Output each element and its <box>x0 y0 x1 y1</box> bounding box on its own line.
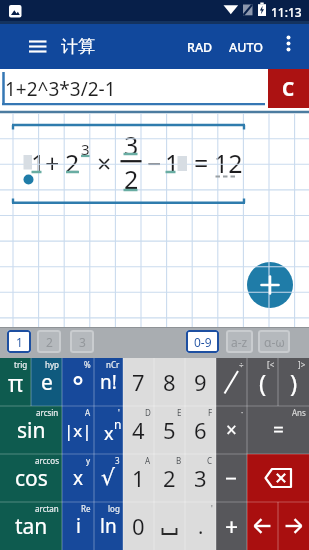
button[interactable]: sin <box>0 406 62 454</box>
button[interactable]: √ <box>94 454 123 502</box>
button[interactable]: + <box>216 502 247 550</box>
staticText: ]> <box>298 359 306 370</box>
button[interactable]: 5 <box>154 406 185 454</box>
staticText: 1 <box>16 334 23 350</box>
button[interactable]: α-ω <box>258 330 290 353</box>
staticText: ' <box>118 407 120 418</box>
staticText: 3 <box>79 334 86 350</box>
staticText: a-z <box>231 334 248 350</box>
staticText: ln <box>100 513 117 539</box>
staticText: × <box>226 417 237 443</box>
staticText: Re <box>81 503 91 514</box>
staticText: · <box>241 407 244 418</box>
button[interactable]: 2 <box>154 454 185 502</box>
staticText: . <box>198 513 204 540</box>
button[interactable]: i <box>62 502 94 550</box>
staticText: e <box>41 368 53 397</box>
staticText: 3 <box>124 128 139 162</box>
button[interactable]: 1 <box>7 330 31 353</box>
staticText: ( <box>259 366 267 399</box>
button[interactable]: × <box>216 406 247 454</box>
button[interactable]: 1 <box>123 454 154 502</box>
staticText: 11:13 <box>271 4 302 20</box>
staticText: ) <box>290 366 298 399</box>
button[interactable]: a-z <box>226 330 253 353</box>
button[interactable]: C <box>268 69 309 108</box>
button[interactable]: 9 <box>185 358 216 406</box>
staticText: trig <box>14 359 28 370</box>
staticText: 2 <box>65 146 80 180</box>
staticText: 5 <box>163 415 176 445</box>
staticText: ' <box>211 503 213 514</box>
button[interactable] <box>278 502 309 550</box>
staticText: i <box>76 513 81 539</box>
button[interactable]: 0 <box>123 502 154 550</box>
staticText: ÷ <box>239 359 244 370</box>
staticText: A <box>85 407 91 418</box>
button[interactable]: 3 <box>70 330 94 353</box>
staticText: α-ω <box>264 334 285 350</box>
button[interactable]: |x| <box>62 406 94 454</box>
staticText: 3 <box>194 463 207 493</box>
staticText: arcsin <box>36 407 59 418</box>
staticText: 0 <box>132 511 145 541</box>
staticText: [< <box>267 359 275 370</box>
button[interactable]: 2 <box>37 330 61 353</box>
button[interactable]: 3 <box>185 454 216 502</box>
staticText: 2 <box>46 334 53 350</box>
button[interactable]: 0-9 <box>186 330 219 353</box>
button[interactable]: 8 <box>154 358 185 406</box>
staticText: × <box>97 146 112 180</box>
button[interactable]: % <box>62 358 94 406</box>
staticText: 2 <box>124 162 139 196</box>
button[interactable]: − <box>216 454 247 502</box>
button[interactable]: x <box>94 406 123 454</box>
staticText: Ans <box>292 407 306 418</box>
button[interactable]: 7 <box>123 358 154 406</box>
button[interactable]: ÷ <box>216 358 247 406</box>
staticText: F <box>208 407 213 418</box>
staticText: arccos <box>35 455 59 466</box>
button[interactable]: cos <box>0 454 62 502</box>
button[interactable]: x <box>62 454 94 502</box>
staticText: AUTO <box>229 39 263 56</box>
staticText: 1 <box>31 146 46 180</box>
button[interactable]: n! <box>94 358 123 406</box>
button[interactable]: ( <box>247 358 278 406</box>
button[interactable]: ln <box>94 502 123 550</box>
staticText: log <box>108 503 120 514</box>
staticText: 8 <box>163 367 176 397</box>
staticText: |x| <box>64 419 92 442</box>
staticText: 1 <box>132 463 145 493</box>
staticText: 0-9 <box>194 334 212 350</box>
button[interactable]: = <box>247 406 309 454</box>
staticText: E <box>177 407 182 418</box>
button[interactable] <box>154 502 185 550</box>
button[interactable]: 6 <box>185 406 216 454</box>
staticText: √ <box>101 465 116 491</box>
button[interactable]: e <box>31 358 62 406</box>
staticText: C <box>207 455 213 466</box>
staticText: % <box>84 359 91 370</box>
staticText: RAD <box>187 39 213 56</box>
button[interactable]: π <box>0 358 31 406</box>
staticText: n! <box>100 369 117 395</box>
staticText: arctan <box>35 503 59 514</box>
button[interactable]: . <box>185 502 216 550</box>
button[interactable]: tan <box>0 502 62 550</box>
staticText: 3 <box>115 455 120 466</box>
staticText: B <box>176 455 182 466</box>
button[interactable] <box>247 502 278 550</box>
staticText: = <box>194 146 209 180</box>
staticText: C <box>282 76 295 102</box>
button[interactable] <box>247 262 293 308</box>
staticText: nCr <box>106 359 120 370</box>
staticText: n <box>114 416 122 432</box>
button[interactable] <box>247 454 309 502</box>
staticText: 7 <box>132 367 145 397</box>
staticText: hyp <box>45 359 59 370</box>
staticText: D <box>145 407 151 418</box>
button[interactable]: 4 <box>123 406 154 454</box>
button[interactable]: ) <box>278 358 309 406</box>
staticText: + <box>45 146 60 180</box>
